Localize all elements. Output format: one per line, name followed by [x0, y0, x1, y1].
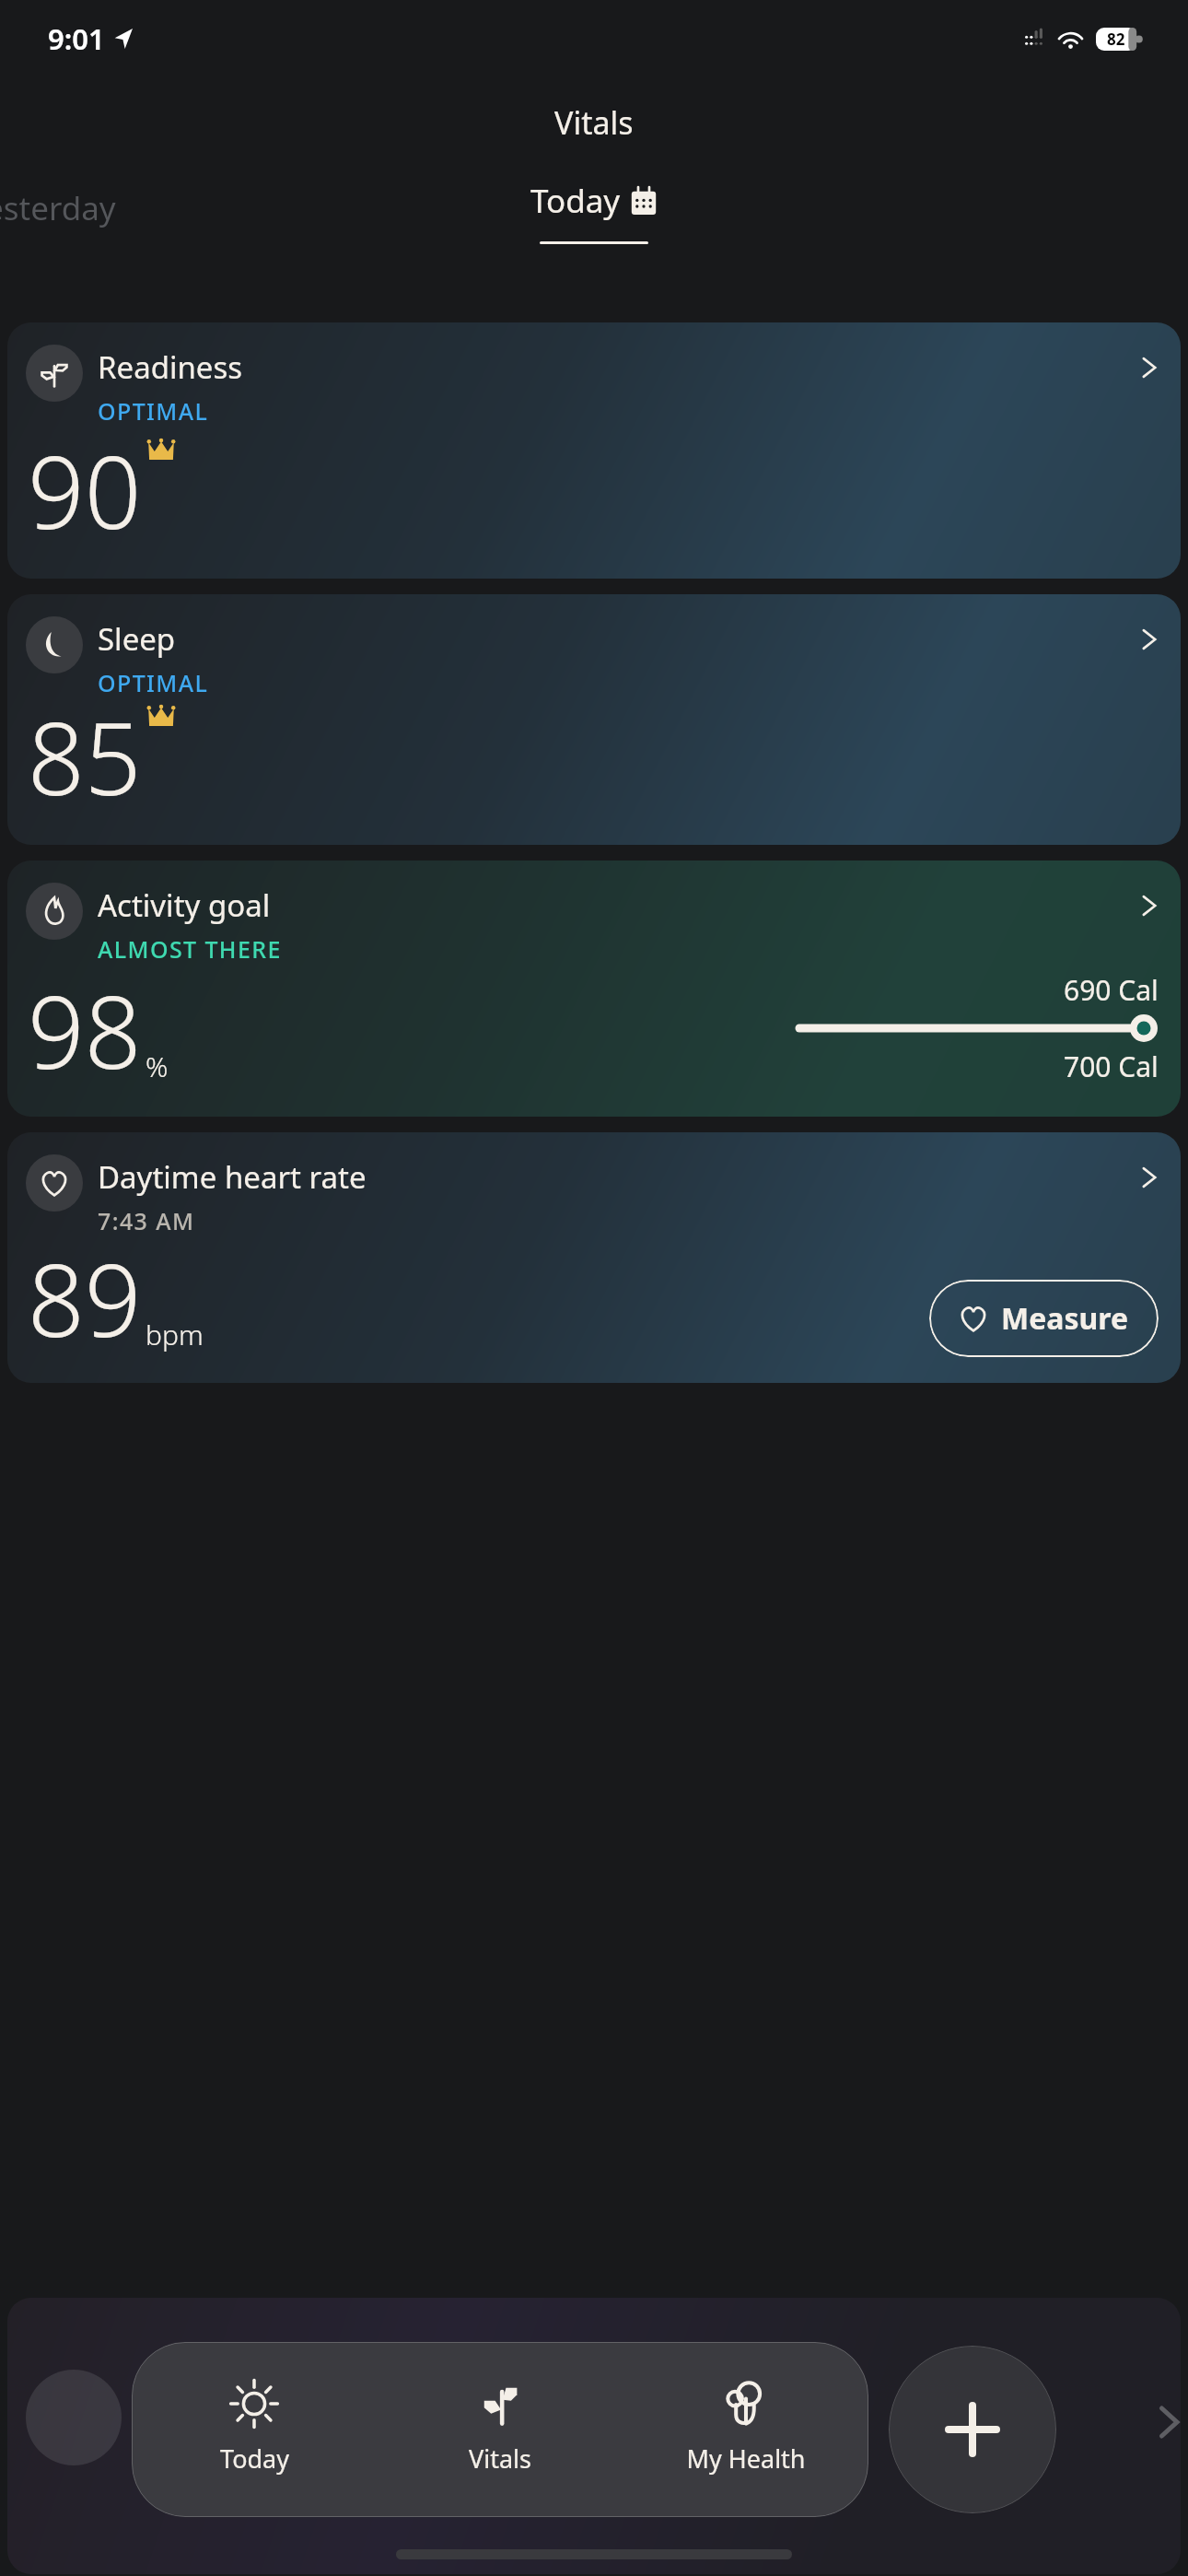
staticText: Measure — [1001, 1298, 1129, 1339]
staticText: Vitals — [554, 101, 634, 144]
staticText: Today — [530, 179, 621, 223]
button[interactable]: Measure — [929, 1280, 1159, 1357]
staticText: 9:01 — [48, 19, 105, 58]
staticText: 85 — [28, 689, 142, 825]
staticText: 690 Cal — [1064, 971, 1159, 1009]
button[interactable]: Activity goal — [7, 861, 1181, 1117]
button[interactable]: My Health — [623, 2342, 868, 2517]
button[interactable]: Sleep — [7, 594, 1181, 845]
staticText: My Health — [686, 2441, 806, 2476]
button[interactable]: Add — [889, 2346, 1056, 2513]
other: Open details — [1136, 627, 1160, 651]
staticText: Today — [220, 2441, 289, 2476]
staticText: Yesterday — [0, 186, 116, 230]
button[interactable]: Vitals — [377, 2342, 623, 2517]
staticText: 90 — [28, 423, 142, 558]
staticText: Activity goal — [98, 884, 271, 926]
button[interactable]: Today — [132, 2342, 377, 2517]
staticText: 700 Cal — [1064, 1048, 1159, 1085]
other: Open details — [1136, 894, 1160, 918]
staticText: Readiness — [98, 346, 243, 388]
staticText: Vitals — [469, 2441, 531, 2476]
staticText: bpm — [146, 1316, 204, 1353]
other: Open details — [1136, 356, 1160, 380]
button[interactable]: Daytime heart rate — [7, 1132, 1181, 1383]
staticText: 89 — [28, 1231, 142, 1366]
staticText: 7:43 AM — [98, 1205, 195, 1236]
staticText: OPTIMAL — [98, 667, 209, 698]
button[interactable]: Yesterday — [0, 179, 129, 238]
staticText: 98 — [28, 963, 142, 1098]
staticText: % — [146, 1048, 169, 1085]
button[interactable]: Today — [514, 173, 674, 244]
other: Open details — [1136, 1165, 1160, 1189]
button[interactable]: Readiness — [7, 322, 1181, 579]
staticText: Sleep — [98, 618, 176, 660]
staticText: OPTIMAL — [98, 395, 209, 427]
staticText: 82 — [1107, 29, 1125, 50]
staticText: ALMOST THERE — [98, 933, 282, 965]
staticText: Daytime heart rate — [98, 1156, 367, 1198]
